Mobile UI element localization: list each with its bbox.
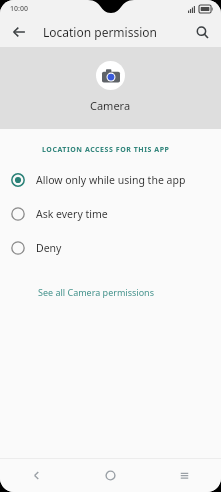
button[interactable]: Search — [189, 19, 215, 45]
button[interactable]: Deny — [0, 231, 221, 265]
staticText: Allow only while using the app — [36, 173, 186, 187]
staticText: LOCATION ACCESS FOR THIS APP — [42, 145, 170, 155]
button[interactable]: Home — [73, 459, 147, 492]
staticText: Location permission — [43, 24, 157, 40]
button[interactable]: Recent apps — [147, 459, 221, 492]
staticText: Deny — [36, 241, 62, 255]
button[interactable]: Back — [0, 459, 73, 492]
staticText: Ask every time — [36, 207, 108, 221]
button[interactable]: Back — [6, 19, 32, 45]
button[interactable]: Allow only while using the app — [0, 163, 221, 197]
staticText: 10:00 — [10, 4, 28, 14]
staticText: Camera — [90, 98, 131, 113]
staticText: See all Camera permissions — [38, 286, 154, 298]
button[interactable]: See all Camera permissions — [0, 283, 221, 301]
button[interactable]: Ask every time — [0, 197, 221, 231]
